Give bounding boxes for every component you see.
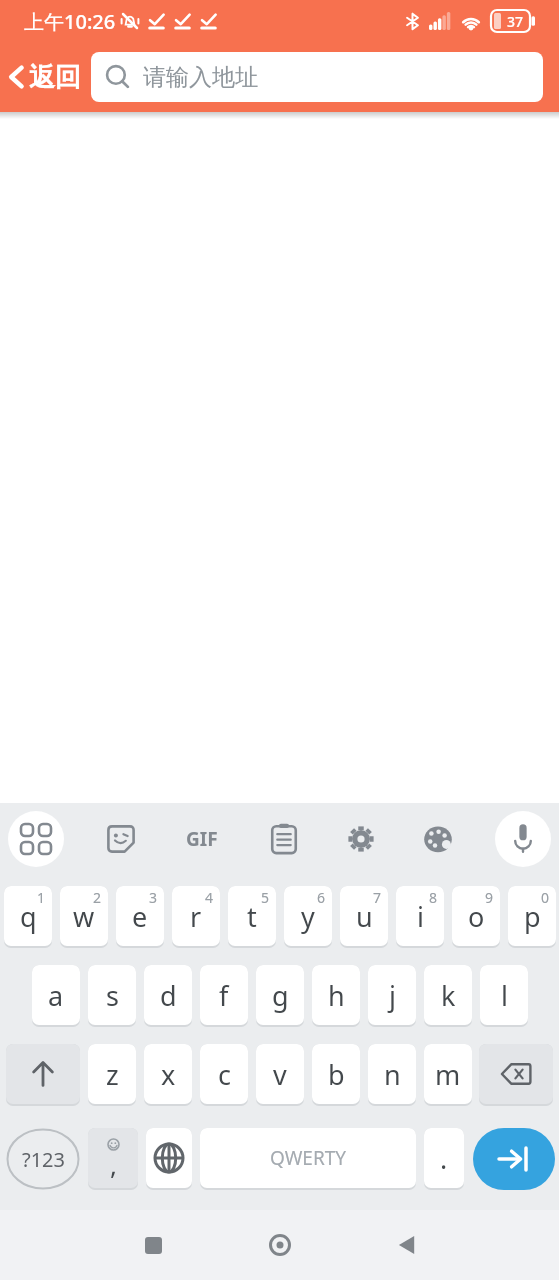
button[interactable]: r (172, 886, 220, 946)
staticText: m (435, 1056, 461, 1093)
staticText: GIF (186, 826, 218, 852)
staticText: h (328, 977, 345, 1014)
staticText: n (384, 1056, 401, 1093)
staticText: 2 (93, 888, 102, 907)
button[interactable]: h (312, 965, 360, 1025)
staticText: l (501, 977, 508, 1014)
staticText: 5 (261, 888, 270, 907)
button[interactable]: s (88, 965, 136, 1025)
staticText: 请输入地址 (143, 63, 258, 92)
button[interactable]: y (284, 886, 332, 946)
staticText: s (106, 977, 119, 1014)
button[interactable]: u (340, 886, 388, 946)
staticText: o (468, 898, 485, 935)
button[interactable] (6, 1044, 80, 1104)
staticText: 0 (541, 888, 550, 907)
button[interactable]: l (480, 965, 528, 1025)
staticText: k (441, 977, 456, 1014)
button[interactable] (495, 811, 551, 867)
button[interactable]: ?123 (6, 1128, 80, 1190)
button[interactable] (129, 1221, 177, 1269)
button[interactable]: GIF (178, 815, 226, 863)
staticText: 3 (149, 888, 158, 907)
button[interactable]: p (508, 886, 556, 946)
staticText: z (106, 1056, 119, 1093)
staticText: r (190, 898, 202, 935)
button[interactable]: c (200, 1044, 248, 1104)
staticText: , (110, 1147, 117, 1182)
button[interactable]: a (32, 965, 80, 1025)
button[interactable] (473, 1128, 555, 1190)
staticText: 返回 (29, 61, 81, 94)
staticText: ?123 (22, 1146, 65, 1173)
staticText: QWERTY (270, 1145, 347, 1171)
staticText: w (73, 898, 95, 935)
staticText: 7 (373, 888, 382, 907)
staticText: a (48, 977, 64, 1014)
button[interactable] (8, 811, 64, 867)
button[interactable] (264, 819, 304, 859)
button[interactable]: o (452, 886, 500, 946)
staticText: q (20, 898, 37, 935)
button[interactable]: v (256, 1044, 304, 1104)
button[interactable] (341, 819, 381, 859)
button[interactable]: z (88, 1044, 136, 1104)
button[interactable]: j (368, 965, 416, 1025)
button[interactable] (418, 819, 458, 859)
button[interactable] (146, 1128, 192, 1188)
staticText: p (524, 898, 541, 935)
staticText: 6 (317, 888, 326, 907)
staticText: y (301, 898, 315, 935)
staticText: 9 (485, 888, 494, 907)
button[interactable]: k (424, 965, 472, 1025)
staticText: t (247, 898, 257, 935)
button[interactable]: w (60, 886, 108, 946)
button[interactable] (101, 819, 141, 859)
staticText: e (132, 898, 148, 935)
staticText: 8 (429, 888, 438, 907)
button[interactable]: g (256, 965, 304, 1025)
staticText: 37 (507, 12, 524, 31)
staticText: 4 (205, 888, 214, 907)
staticText: g (272, 977, 289, 1014)
staticText: i (417, 898, 424, 935)
button[interactable]: QWERTY (200, 1128, 416, 1188)
button[interactable]: d (144, 965, 192, 1025)
button[interactable] (383, 1221, 431, 1269)
staticText: x (161, 1056, 176, 1093)
button[interactable]: t (228, 886, 276, 946)
button[interactable]: . (424, 1128, 464, 1188)
staticText: f (219, 977, 229, 1014)
staticText: 1 (37, 888, 46, 907)
button[interactable]: 请输入地址 (91, 52, 543, 102)
button[interactable]: m (424, 1044, 472, 1104)
button[interactable]: i (396, 886, 444, 946)
button[interactable]: f (200, 965, 248, 1025)
staticText: u (356, 898, 373, 935)
button[interactable]: e (116, 886, 164, 946)
button[interactable]: q (4, 886, 52, 946)
button[interactable]: b (312, 1044, 360, 1104)
staticText: d (160, 977, 177, 1014)
button[interactable]: , (88, 1128, 138, 1188)
staticText: 上午10:26 (24, 8, 116, 35)
staticText: . (440, 1140, 448, 1177)
button[interactable] (256, 1221, 304, 1269)
staticText: v (273, 1056, 287, 1093)
button[interactable]: x (144, 1044, 192, 1104)
button[interactable] (479, 1044, 553, 1104)
staticText: c (218, 1056, 231, 1093)
staticText: b (328, 1056, 345, 1093)
staticText: j (389, 977, 396, 1014)
button[interactable]: 返回 (0, 53, 87, 101)
button[interactable]: n (368, 1044, 416, 1104)
